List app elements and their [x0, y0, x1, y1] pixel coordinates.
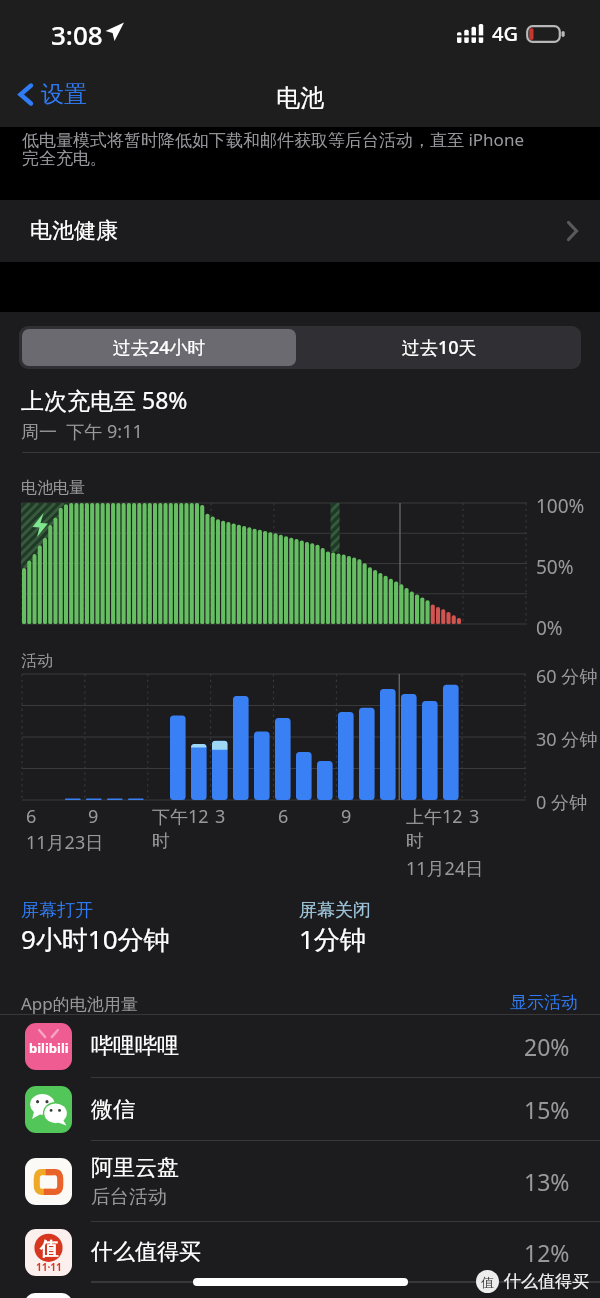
- button[interactable]: 值: [0, 1222, 600, 1282]
- staticText: 周一 下午 9:11: [21, 419, 143, 444]
- staticText: 60 分钟: [536, 664, 598, 689]
- staticText: 屏幕打开: [21, 899, 93, 922]
- staticText: 活动: [21, 651, 53, 671]
- staticText: 9: [88, 804, 99, 829]
- other: Cellular signal: [457, 24, 486, 43]
- button[interactable]: 设置: [10, 74, 99, 115]
- staticText: 过去24小时: [113, 335, 206, 360]
- staticText: 时: [152, 830, 170, 853]
- staticText: 阿里云盘: [91, 1154, 179, 1182]
- staticText: bilibili: [29, 1039, 69, 1057]
- staticText: 11·11: [36, 1260, 62, 1274]
- staticText: 过去10天: [402, 335, 477, 360]
- button[interactable]: 过去10天: [301, 326, 578, 369]
- button[interactable]: 微信: [0, 1078, 600, 1141]
- staticText: 11月23日: [26, 830, 104, 855]
- staticText: 什么值得买: [504, 1271, 589, 1292]
- staticText: 13%: [524, 1166, 570, 1197]
- staticText: 3:08: [51, 17, 103, 52]
- staticText: 0 分钟: [536, 790, 587, 815]
- staticText: 显示活动: [510, 992, 578, 1013]
- staticText: 100%: [536, 493, 585, 519]
- staticText: 15%: [524, 1094, 570, 1125]
- staticText: 屏幕关闭: [299, 899, 371, 922]
- staticText: 6: [26, 804, 37, 829]
- staticText: 9: [341, 804, 352, 829]
- staticText: 30 分钟: [536, 727, 598, 752]
- staticText: 0%: [536, 615, 563, 641]
- staticText: 11月24日: [406, 856, 484, 881]
- button[interactable]: 过去24小时: [22, 329, 296, 366]
- button[interactable]: bilibili: [0, 1014, 600, 1078]
- staticText: 低电量模式将暂时降低如下载和邮件获取等后台活动，直至 iPhone: [22, 128, 524, 151]
- staticText: 微信: [91, 1096, 135, 1124]
- staticText: 值: [40, 1238, 58, 1261]
- staticText: 完全充电。: [22, 148, 107, 169]
- button[interactable]: 电池健康: [0, 200, 600, 262]
- staticText: 电池电量: [21, 478, 85, 498]
- staticText: 3: [215, 804, 226, 829]
- staticText: 9小时10分钟: [21, 921, 170, 957]
- button[interactable]: 阿里云盘: [0, 1141, 600, 1222]
- staticText: 电池: [276, 83, 324, 113]
- staticText: 上午12: [406, 804, 463, 829]
- other: Location: [105, 22, 124, 41]
- staticText: 时: [406, 830, 424, 853]
- staticText: 3: [469, 804, 480, 829]
- button[interactable]: 显示活动: [510, 992, 578, 1013]
- staticText: 值: [481, 1274, 494, 1290]
- staticText: 电池健康: [30, 217, 118, 245]
- staticText: 哔哩哔哩: [91, 1032, 179, 1060]
- staticText: 设置: [41, 80, 87, 109]
- staticText: 4G: [492, 20, 518, 47]
- staticText: 1分钟: [299, 921, 366, 957]
- other: Battery low: [526, 25, 566, 43]
- staticText: App的电池用量: [21, 992, 138, 1015]
- staticText: 后台活动: [91, 1185, 167, 1209]
- staticText: 20%: [524, 1031, 570, 1062]
- staticText: 什么值得买: [91, 1238, 201, 1266]
- staticText: 下午12: [152, 804, 209, 829]
- staticText: 上次充电至 58%: [21, 384, 188, 415]
- staticText: 50%: [536, 554, 574, 580]
- staticText: 12%: [524, 1237, 570, 1268]
- staticText: 6: [278, 804, 289, 829]
